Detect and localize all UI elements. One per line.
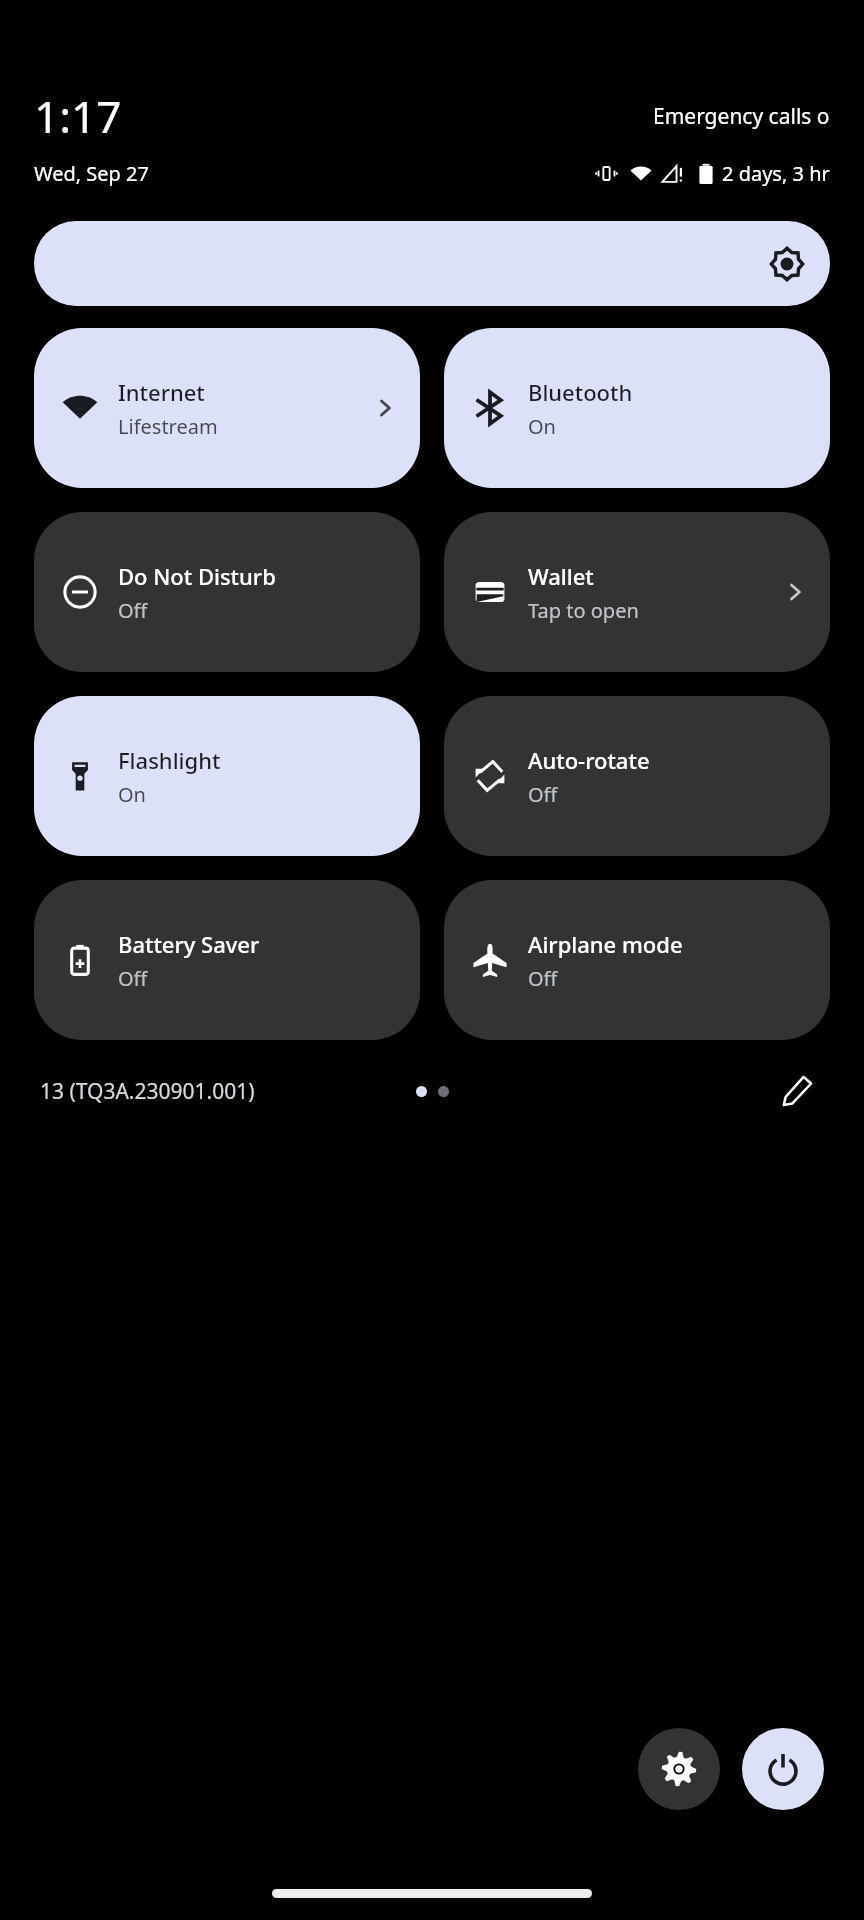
staticText: Airplane mode — [528, 929, 683, 959]
staticText: 2 days, 3 hr — [722, 160, 830, 187]
button[interactable]: Power — [742, 1728, 824, 1810]
staticText: Bluetooth — [528, 377, 633, 407]
staticText: Off — [528, 965, 558, 992]
staticText: Off — [118, 597, 148, 624]
button[interactable]: Bluetooth — [444, 328, 830, 488]
staticText: Off — [118, 965, 148, 992]
staticText: Emergency calls o — [653, 102, 830, 131]
staticText: Auto-rotate — [528, 745, 650, 775]
button[interactable]: Airplane mode — [444, 880, 830, 1040]
staticText: Wed, Sep 27 — [34, 160, 149, 187]
button[interactable]: Auto-rotate — [444, 696, 830, 856]
staticText: On — [118, 781, 146, 808]
staticText: Battery Saver — [118, 929, 260, 959]
staticText: Lifestream — [118, 413, 218, 440]
staticText: Tap to open — [528, 597, 639, 624]
button[interactable]: Do Not Disturb — [34, 512, 420, 672]
button[interactable]: Flashlight — [34, 696, 420, 856]
button[interactable]: Brightness — [34, 221, 830, 306]
staticText: Flashlight — [118, 745, 221, 775]
button[interactable]: Battery Saver — [34, 880, 420, 1040]
button[interactable]: Edit tiles — [770, 1064, 824, 1118]
button[interactable]: Settings — [638, 1728, 720, 1810]
staticText: On — [528, 413, 556, 440]
staticText: Do Not Disturb — [118, 561, 276, 591]
button[interactable]: Internet — [34, 328, 420, 488]
staticText: Wallet — [528, 561, 594, 591]
staticText: Off — [528, 781, 558, 808]
button[interactable]: Wallet — [444, 512, 830, 672]
staticText: 1:17 — [34, 86, 122, 146]
staticText: Internet — [118, 377, 205, 407]
staticText: 13 (TQ3A.230901.001) — [40, 1077, 255, 1106]
